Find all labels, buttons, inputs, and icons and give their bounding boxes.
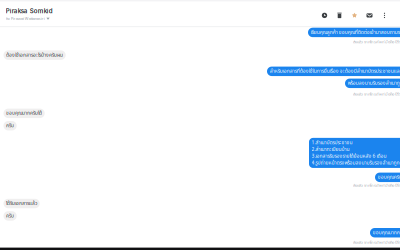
- staticText: 2.สำเนาทะเบียนบ้าน: [312, 146, 350, 153]
- button[interactable]: Snooze: [320, 11, 328, 19]
- staticText: Piraksa Somkid: [6, 7, 53, 15]
- button[interactable]: Piraksa Somkid: [6, 7, 53, 22]
- button[interactable]: Delete: [335, 11, 343, 19]
- staticText: สำหรับเอกสารที่ต้องใช้ในการยื่นเรื่อง จะ…: [270, 68, 400, 75]
- staticText: 4.รูปถ่ายหน้าตรงพร้อมลงนามรับรองสำเนาถูก…: [312, 160, 400, 166]
- staticText: ส่งแล้ว จากโทรศัพท์มือถือ 09:23: [353, 91, 400, 97]
- staticText: ขอบคุณมากครับได้: [6, 110, 42, 117]
- staticText: ครับ: [6, 212, 14, 220]
- staticText: ต้องใช้เอกสารอะไรบ้างครับผม: [6, 51, 63, 59]
- button[interactable]: Mark as unread: [365, 11, 373, 19]
- staticText: พร้อมลงนามรับรองสำเนาถูกต้อง: [348, 80, 400, 87]
- staticText: ส่งแล้ว จากโทรศัพท์มือถือ 09:51: [353, 239, 400, 246]
- staticText: ขอบคุณครับ: [378, 174, 400, 181]
- staticText: ถึง Pirawat Wattanasiri: [6, 16, 45, 22]
- staticText: ครับ: [6, 122, 14, 129]
- staticText: ขอบคุณมากครับ: [373, 229, 400, 236]
- staticText: 1.สำเนาบัตรประชาชน: [312, 139, 353, 146]
- staticText: 3.เอกสารรับรองรายได้ย้อนหลัง 6 เดือน: [312, 153, 387, 160]
- staticText: เรียนคุณลูกค้า ขอบคุณที่ติดต่อเข้ามาสอบถ…: [311, 29, 400, 36]
- staticText: ได้รับเอกสารแล้ว: [6, 200, 37, 207]
- staticText: ส่งแล้ว จากโทรศัพท์มือถือ 09:42: [353, 182, 400, 188]
- staticText: ส่งแล้ว จากโทรศัพท์มือถือ 09:18: [353, 39, 400, 45]
- button[interactable]: Star: [350, 11, 358, 19]
- button[interactable]: More options: [380, 11, 388, 19]
